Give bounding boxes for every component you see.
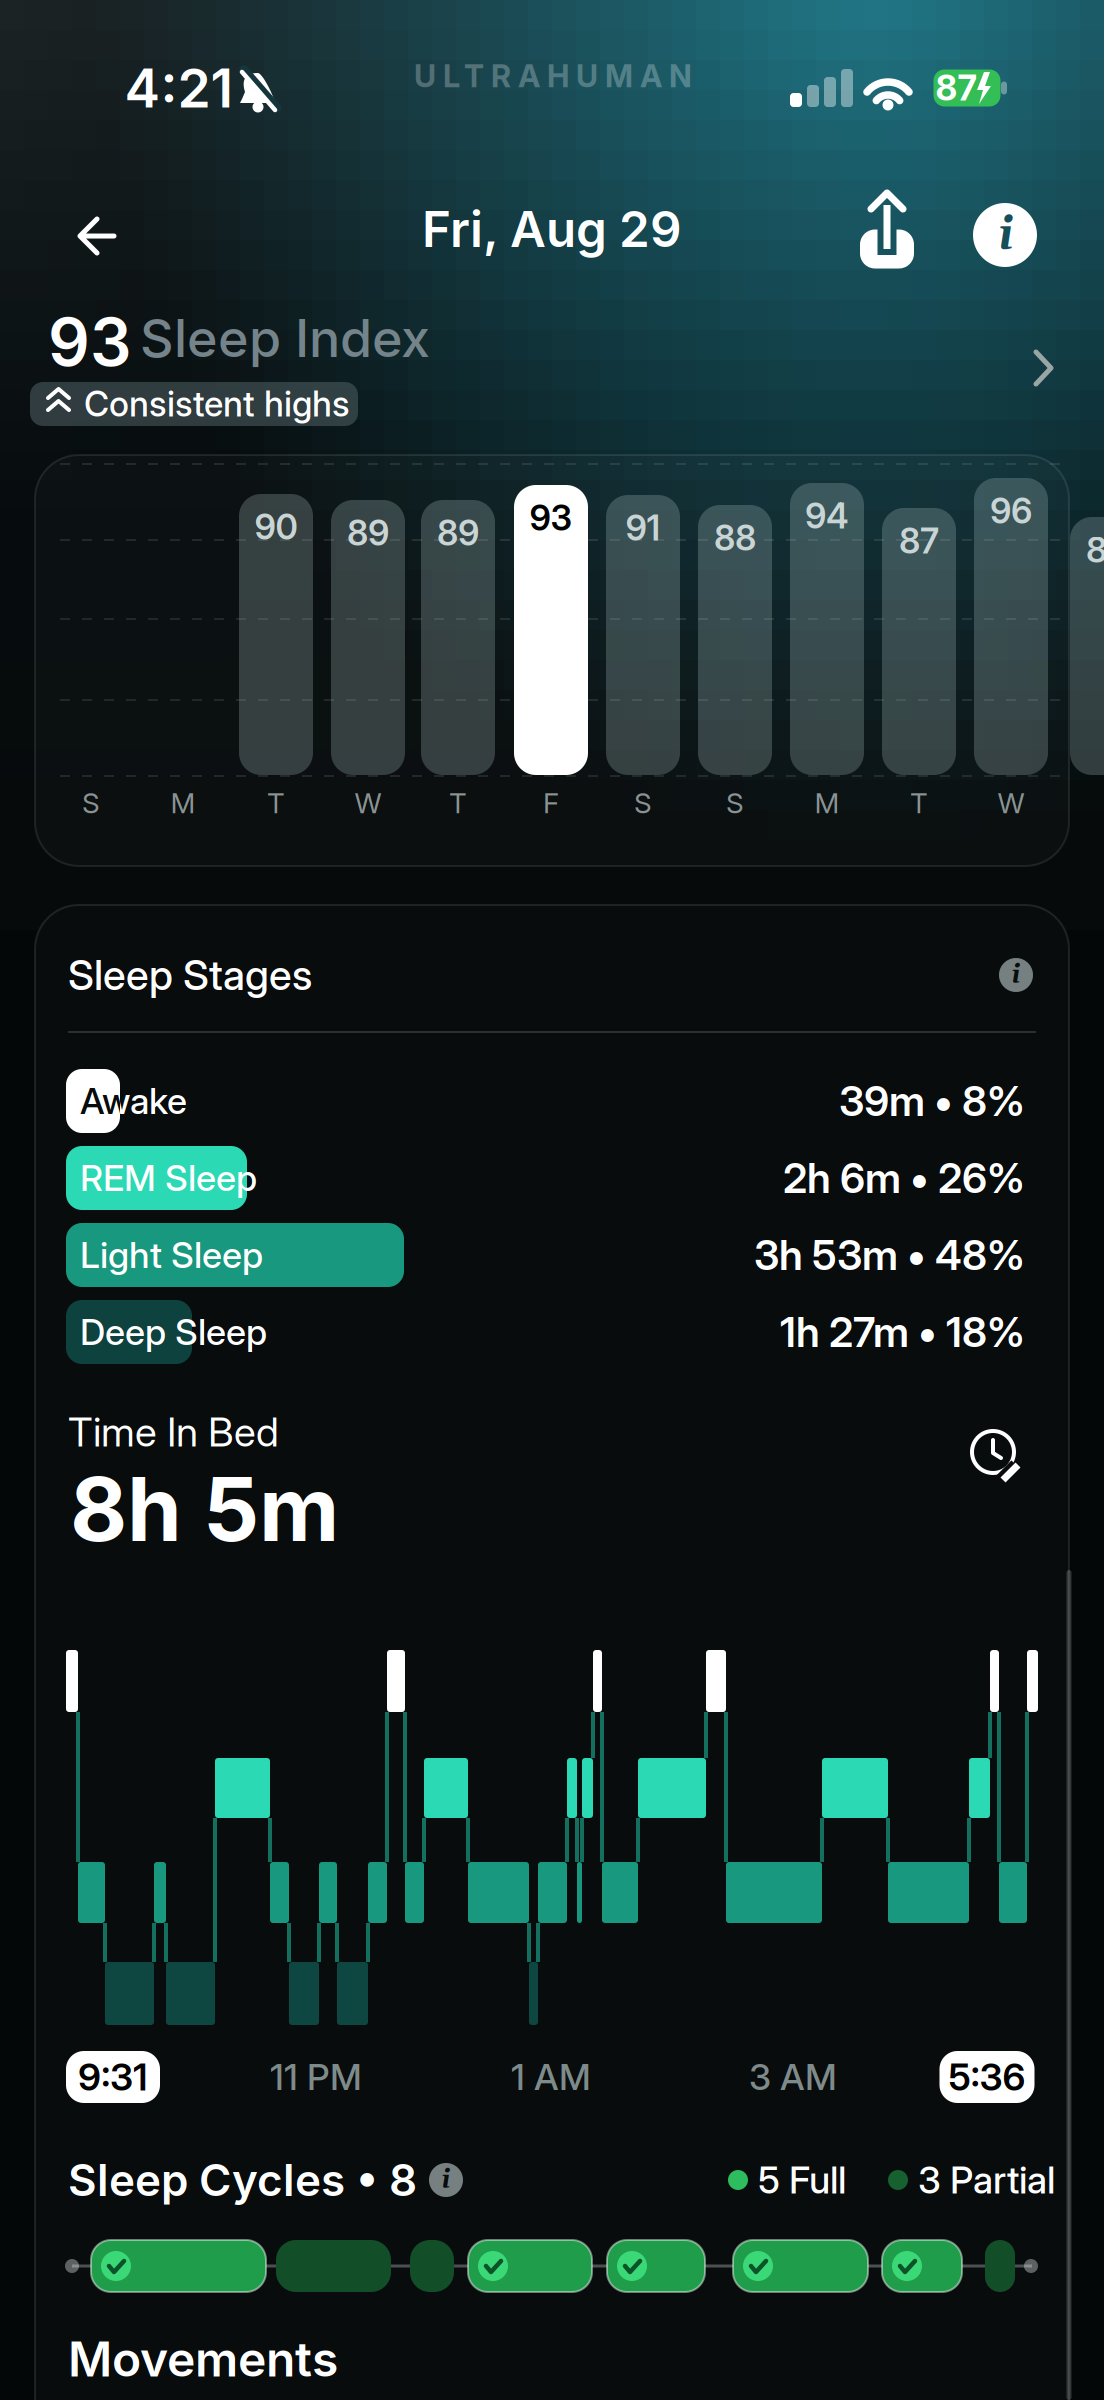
staticText: i [441, 2163, 451, 2197]
staticText: 96 [990, 490, 1032, 532]
staticText: Time In Bed [68, 1408, 279, 1456]
staticText: 9:31 [78, 2054, 148, 2100]
button[interactable]: Sleep start time [66, 2051, 160, 2103]
staticText: i [997, 207, 1014, 265]
staticText: 3 Partial [918, 2157, 1055, 2203]
staticText: 94 [805, 495, 849, 537]
button[interactable]: Sleep end time [939, 2051, 1034, 2103]
staticText: M [814, 786, 839, 820]
staticText: S [726, 786, 744, 820]
staticText: REM Sleep [80, 1156, 257, 1200]
staticText: 8h 5m [70, 1456, 339, 1562]
staticText: S [634, 786, 652, 820]
staticText: 87 [899, 520, 939, 562]
staticText: Deep Sleep [80, 1310, 267, 1354]
button[interactable]: Back [59, 198, 135, 274]
staticText: 91 [625, 507, 660, 549]
staticText: Fri, Aug 29 [422, 199, 682, 259]
staticText: T [910, 786, 928, 820]
staticText: 1 AM [511, 2055, 591, 2099]
staticText: 3 AM [749, 2055, 837, 2099]
staticText: 86 [1086, 529, 1104, 571]
staticText: i [1011, 958, 1021, 992]
staticText: 1h 27m • 18% [780, 1307, 1025, 1357]
button[interactable]: Edit time in bed [963, 1423, 1033, 1493]
staticText: Awake [80, 1079, 187, 1123]
staticText: Sleep Index [140, 306, 430, 369]
staticText: 11 PM [270, 2055, 362, 2099]
staticText: 93 [529, 497, 572, 539]
staticText: T [267, 786, 285, 820]
staticText: 93 [48, 302, 132, 381]
staticText: M [170, 786, 195, 820]
staticText: Consistent highs [84, 383, 350, 425]
staticText: 5 Full [758, 2157, 846, 2203]
staticText: Awake [80, 1079, 187, 1123]
staticText: Sleep Stages [68, 950, 312, 1000]
button[interactable]: Sleep cycles info [424, 2158, 468, 2202]
button[interactable]: Share [849, 189, 925, 273]
staticText: W [354, 786, 381, 820]
staticText: ULTRAHUMAN [414, 57, 692, 94]
button[interactable]: Info [969, 199, 1041, 271]
staticText: S [82, 786, 100, 820]
staticText: 88 [714, 517, 756, 559]
staticText: 39m • 8% [839, 1076, 1025, 1126]
staticText: Sleep Cycles • 8 [68, 2153, 417, 2207]
staticText: 4:21 [124, 56, 233, 120]
staticText: 5:36 [948, 2054, 1025, 2100]
staticText: T [449, 786, 467, 820]
staticText: Movements [68, 2330, 338, 2388]
staticText: 89 [347, 512, 389, 554]
staticText: W [997, 786, 1024, 820]
button[interactable]: Sleep stages info [994, 953, 1038, 997]
staticText: 90 [254, 506, 297, 548]
staticText: 2h 6m • 26% [783, 1153, 1025, 1203]
staticText: 89 [437, 512, 479, 554]
button[interactable]: 93 [20, 306, 1084, 436]
staticText: 3h 53m • 48% [754, 1230, 1025, 1280]
staticText: F [543, 786, 559, 820]
staticText: Light Sleep [80, 1233, 263, 1277]
staticText: 87 [935, 67, 976, 109]
